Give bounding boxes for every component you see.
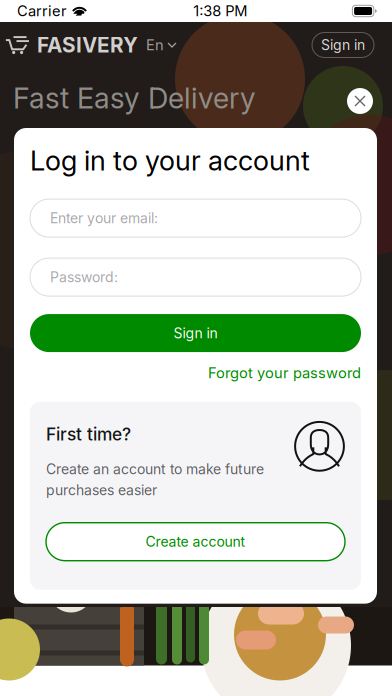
- staticText: 1:38 PM: [193, 2, 247, 20]
- staticText: Password:: [50, 269, 118, 285]
- button[interactable]: Enter your email:: [30, 199, 361, 237]
- staticText: En: [146, 36, 164, 54]
- staticText: Sign in: [173, 325, 217, 341]
- button[interactable]: Forgot your password: [208, 364, 361, 382]
- staticText: Enter your email:: [50, 210, 158, 226]
- staticText: FASIVERY: [37, 32, 138, 57]
- staticText: Fast Easy Delivery: [13, 81, 256, 115]
- button[interactable]: Create account: [46, 523, 345, 561]
- staticText: purchases easier: [46, 482, 157, 499]
- button[interactable]: Password:: [30, 258, 361, 296]
- button[interactable]: Sign in: [30, 314, 361, 352]
- staticText: Forgot your password: [208, 364, 361, 382]
- button[interactable]: Close: [345, 86, 375, 116]
- staticText: Log in to your account: [30, 144, 310, 177]
- button[interactable]: En: [146, 28, 176, 62]
- staticText: First time?: [46, 424, 131, 445]
- staticText: Carrier: [17, 2, 67, 20]
- button[interactable]: Sign in: [312, 32, 374, 57]
- staticText: Create an account to make future: [46, 461, 264, 478]
- staticText: Sign in: [321, 36, 365, 53]
- staticText: Create account: [145, 533, 245, 550]
